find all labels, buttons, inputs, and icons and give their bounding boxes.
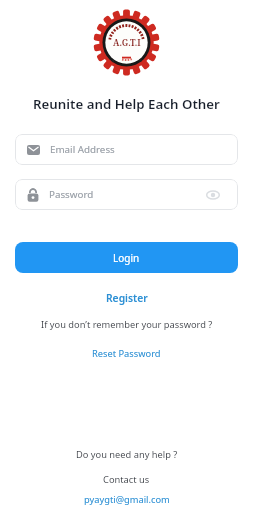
button[interactable]: Password — [15, 179, 238, 210]
button[interactable]: pyaygti@gmail.com — [84, 493, 170, 506]
button[interactable]: Register — [106, 291, 148, 305]
staticText: Login — [113, 251, 140, 265]
staticText: If you don’t remember your password ? — [41, 318, 213, 331]
button[interactable] — [206, 190, 220, 200]
staticText: Password — [49, 188, 206, 201]
staticText: Contact us — [103, 473, 150, 486]
button[interactable]: Reset Password — [92, 347, 161, 360]
staticText: Email Address — [50, 143, 115, 156]
staticText: Reset Password — [92, 347, 161, 360]
staticText: Do you need any help ? — [76, 448, 178, 461]
staticText: Register — [106, 291, 148, 305]
staticText: pyaygti@gmail.com — [84, 493, 170, 506]
button[interactable]: Login — [15, 242, 238, 273]
staticText: Reunite and Help Each Other — [33, 95, 220, 113]
button[interactable]: Email Address — [15, 134, 238, 165]
staticText: A.G.T.I — [113, 37, 141, 49]
